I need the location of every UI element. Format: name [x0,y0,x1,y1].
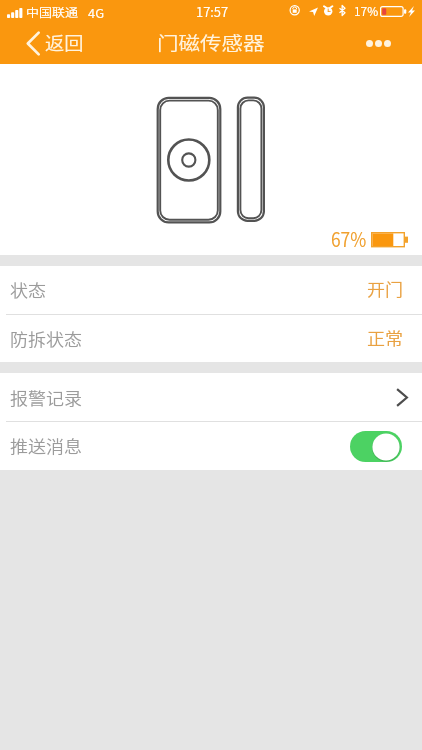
staticText: 推送消息 [10,433,82,457]
staticText: 返回 [45,30,84,56]
button[interactable]: 防拆状态 [0,315,422,362]
button[interactable]: Push notification toggle [350,431,402,462]
staticText: 中国联通 [26,4,79,21]
staticText: 17% [354,2,379,19]
staticText: 门磁传感器 [157,29,265,55]
staticText: 报警记录 [10,385,82,409]
staticText: 正常 [367,325,403,349]
staticText: 4G [88,3,105,21]
staticText: 17:57 [196,2,229,21]
button[interactable]: More options [340,29,422,60]
button[interactable]: 报警记录 [0,373,422,421]
button[interactable]: 返回 [0,24,100,64]
staticText: 防拆状态 [10,326,82,350]
staticText: 开门 [367,276,403,300]
button[interactable]: 推送消息 [0,422,422,470]
button[interactable]: 状态 [0,266,422,314]
staticText: 67% [331,224,367,252]
staticText: 状态 [10,277,46,301]
